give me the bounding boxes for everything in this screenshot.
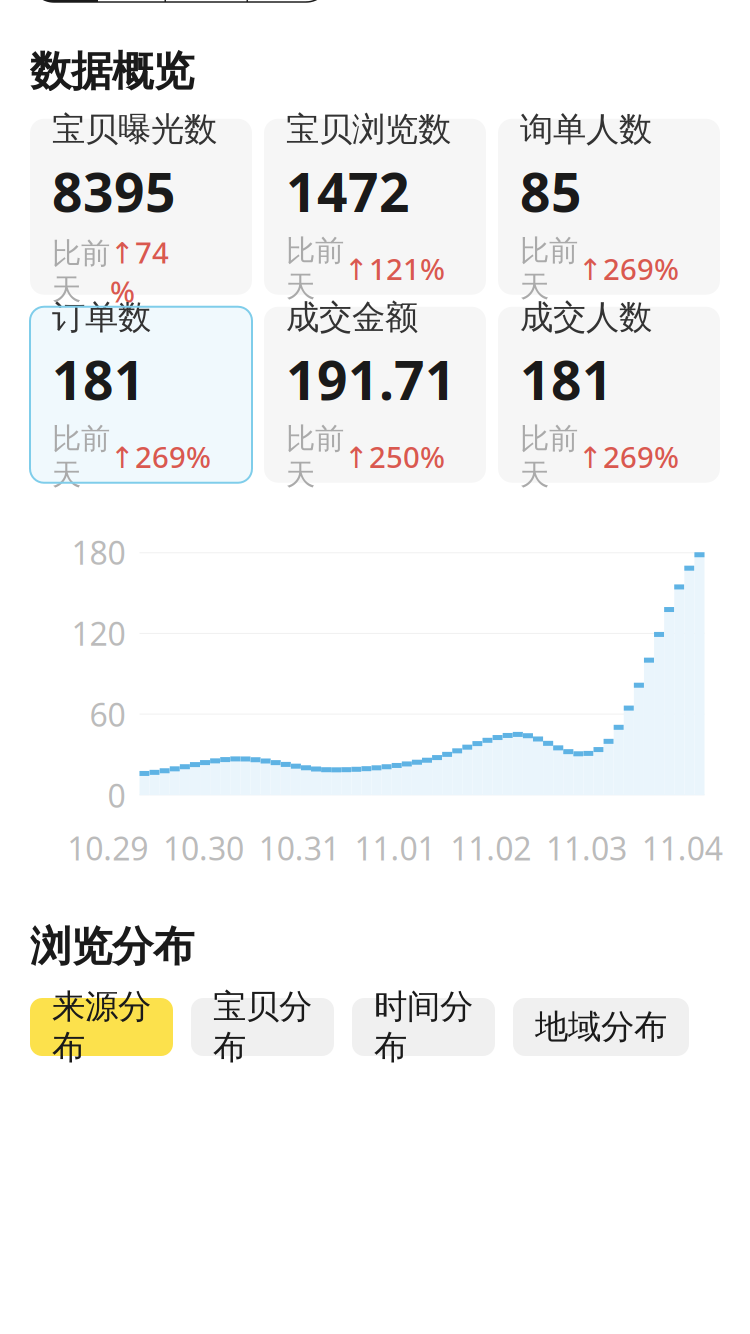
- button[interactable]: 订单数: [30, 307, 252, 483]
- staticText: 比前天: [520, 233, 578, 305]
- button[interactable]: 宝贝分布: [191, 998, 334, 1056]
- staticText: 比前天: [52, 421, 110, 493]
- staticText: 浏览分布: [30, 921, 194, 972]
- staticText: 数据概览: [30, 46, 194, 97]
- staticText: 地域分布: [535, 1006, 667, 1047]
- staticText: 时间分布: [374, 986, 473, 1068]
- button[interactable]: 成交人数: [498, 307, 720, 483]
- staticText: ↑269%: [578, 437, 679, 476]
- button[interactable]: 地域分布: [513, 998, 689, 1056]
- staticText: ↑269%: [110, 437, 211, 476]
- staticText: 11.01: [354, 827, 435, 869]
- staticText: ↑74%: [110, 233, 169, 310]
- staticText: 比前天: [520, 421, 578, 493]
- button[interactable]: 询单人数: [498, 119, 720, 295]
- staticText: 成交人数: [520, 297, 652, 338]
- staticText: 10.29: [67, 827, 148, 869]
- staticText: 60: [89, 693, 125, 735]
- staticText: 10.31: [259, 827, 340, 869]
- staticText: 180: [71, 531, 125, 573]
- button[interactable]: 时间分布: [352, 998, 495, 1056]
- staticText: 191.71: [286, 344, 456, 415]
- staticText: 10.30: [163, 827, 244, 869]
- staticText: 宝贝浏览数: [286, 109, 451, 150]
- staticText: 询单人数: [520, 109, 652, 150]
- staticText: 11.02: [450, 827, 531, 869]
- staticText: ↑250%: [344, 437, 445, 476]
- button[interactable]: 宝贝曝光数: [30, 119, 252, 295]
- staticText: 比前天: [286, 233, 344, 305]
- staticText: 来源分布: [52, 986, 151, 1068]
- button[interactable]: 15天: [166, 0, 248, 2]
- staticText: 宝贝分布: [213, 986, 312, 1068]
- staticText: ↑269%: [578, 249, 679, 288]
- staticText: 0: [107, 774, 125, 816]
- staticText: 成交金额: [286, 297, 418, 338]
- button[interactable]: 宝贝浏览数: [264, 119, 486, 295]
- staticText: ↑121%: [344, 249, 445, 288]
- button[interactable]: 成交金额: [264, 307, 486, 483]
- button[interactable]: 1天: [30, 0, 98, 2]
- button[interactable]: 7天: [98, 0, 166, 2]
- staticText: 181: [520, 344, 613, 415]
- staticText: 8395: [52, 156, 176, 227]
- staticText: 11.04: [642, 827, 723, 869]
- button[interactable]: 30天: [248, 0, 330, 2]
- staticText: 1472: [286, 156, 410, 227]
- staticText: 比前天: [52, 235, 110, 308]
- staticText: 11.03: [546, 827, 627, 869]
- staticText: 宝贝曝光数: [52, 109, 217, 150]
- staticText: 85: [520, 156, 582, 227]
- staticText: 120: [71, 612, 125, 654]
- staticText: 181: [52, 344, 145, 415]
- button[interactable]: 来源分布: [30, 998, 173, 1056]
- staticText: 比前天: [286, 421, 344, 493]
- staticText: 订单数: [52, 297, 151, 338]
